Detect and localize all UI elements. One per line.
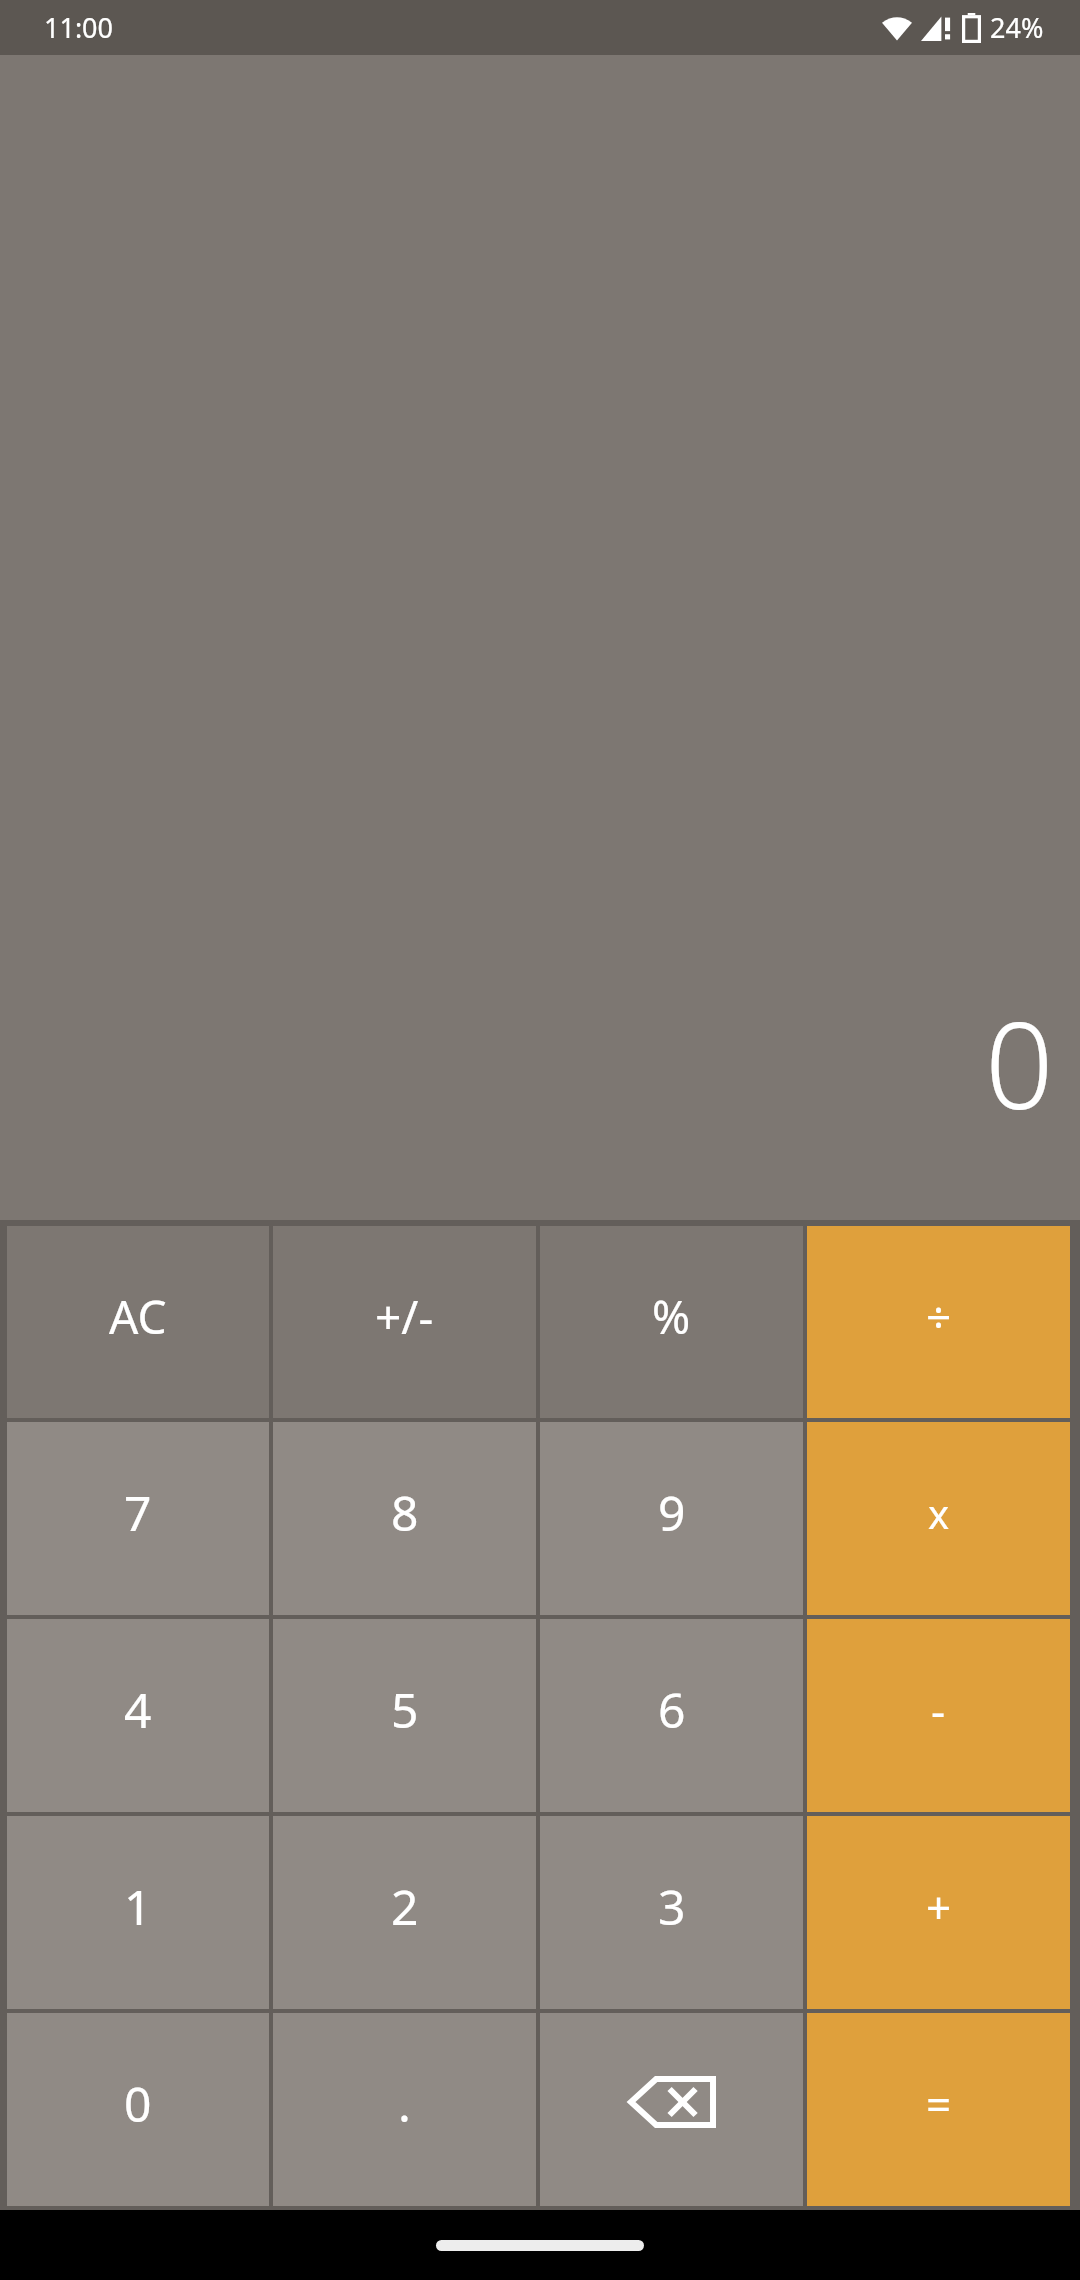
button[interactable]: +/- (273, 1226, 536, 1418)
staticText: 11:00 (44, 9, 114, 46)
button[interactable]: 3 (540, 1816, 803, 2009)
staticText: 3 (658, 1874, 686, 1939)
staticText: 4 (124, 1677, 152, 1742)
button[interactable]: 8 (273, 1422, 536, 1615)
staticText: 24% (990, 9, 1044, 46)
staticText: AC (109, 1285, 167, 1348)
staticText: x (928, 1486, 950, 1540)
button[interactable]: 0 (7, 2013, 269, 2206)
staticText: 2 (391, 1874, 419, 1939)
staticText: 0 (124, 2071, 152, 2136)
button[interactable]: 1 (7, 1816, 269, 2009)
button[interactable]: 4 (7, 1619, 269, 1812)
staticText: 1 (124, 1874, 152, 1939)
staticText: 6 (658, 1677, 686, 1742)
button[interactable]: + (807, 1816, 1070, 2009)
button[interactable]: 7 (7, 1422, 269, 1615)
staticText: 8 (391, 1480, 419, 1545)
button[interactable]: AC (7, 1226, 269, 1418)
button[interactable]: Backspace (540, 2013, 803, 2206)
button[interactable]: . (273, 2013, 536, 2206)
button[interactable]: = (807, 2013, 1070, 2206)
staticText: . (398, 2071, 411, 2136)
staticText: 7 (124, 1480, 152, 1545)
button[interactable]: 6 (540, 1619, 803, 1812)
staticText: % (652, 1285, 691, 1348)
staticText: = (926, 2074, 952, 2134)
button[interactable]: ÷ (807, 1226, 1070, 1418)
button[interactable]: 5 (273, 1619, 536, 1812)
staticText: ÷ (926, 1286, 952, 1346)
staticText: 9 (658, 1480, 686, 1545)
staticText: + (926, 1877, 952, 1937)
button[interactable]: - (807, 1619, 1070, 1812)
staticText: +/- (375, 1285, 434, 1348)
button[interactable]: 2 (273, 1816, 536, 2009)
button[interactable]: x (807, 1422, 1070, 1615)
staticText: - (931, 1680, 946, 1740)
button[interactable]: % (540, 1226, 803, 1418)
button[interactable]: 9 (540, 1422, 803, 1615)
staticText: 0 (985, 981, 1054, 1144)
staticText: 5 (391, 1677, 419, 1742)
